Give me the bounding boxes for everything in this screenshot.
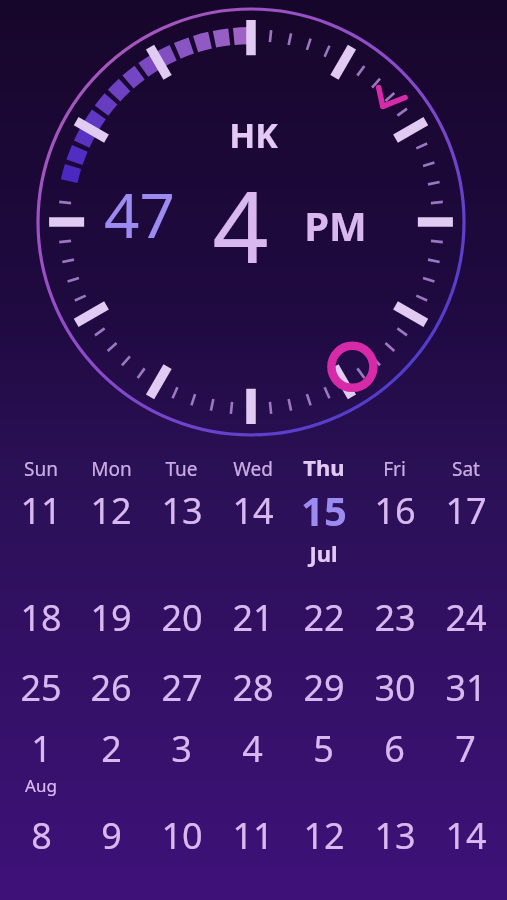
staticText: 12 (303, 811, 345, 860)
button[interactable]: 6 (359, 724, 430, 773)
button[interactable]: Clock face, 4:47 PM Hong Kong (0, 0, 507, 448)
button[interactable]: 31 (430, 663, 501, 712)
button[interactable]: 26 (76, 663, 146, 712)
button[interactable]: 11 (217, 811, 288, 860)
staticText: 5 (313, 724, 334, 773)
staticText: 25 (20, 663, 62, 712)
button[interactable]: 3 (146, 724, 217, 773)
staticText: Wed (233, 456, 273, 482)
staticText: 4 (242, 724, 263, 773)
button[interactable]: Fri (359, 456, 430, 482)
staticText: Fri (383, 456, 406, 482)
staticText: 13 (161, 486, 203, 535)
button[interactable]: 23 (359, 593, 430, 642)
button[interactable]: 29 (288, 663, 359, 712)
button[interactable]: 1 (6, 724, 76, 773)
button[interactable]: 24 (430, 593, 501, 642)
staticText: 29 (303, 663, 345, 712)
staticText: Mon (91, 456, 132, 482)
staticText: 26 (90, 663, 132, 712)
staticText: 3 (171, 724, 192, 773)
staticText: 21 (232, 593, 274, 642)
button[interactable]: 11 (6, 486, 76, 535)
staticText: 23 (374, 593, 416, 642)
button[interactable]: 8 (6, 811, 76, 860)
staticText: 17 (445, 486, 487, 535)
button[interactable]: Tue (146, 456, 217, 482)
button[interactable]: 20 (146, 593, 217, 642)
staticText: 11 (20, 486, 62, 535)
staticText: 4 (212, 158, 269, 291)
button[interactable]: 28 (217, 663, 288, 712)
button[interactable]: 21 (217, 593, 288, 642)
button[interactable]: 22 (288, 593, 359, 642)
button[interactable]: Sun (6, 456, 76, 482)
staticText: 11 (232, 811, 274, 860)
button[interactable]: 16 (359, 486, 430, 535)
button[interactable]: 25 (6, 663, 76, 712)
staticText: 19 (90, 593, 132, 642)
staticText: 30 (374, 663, 416, 712)
button[interactable]: 13 (146, 486, 217, 535)
button[interactable]: 18 (6, 593, 76, 642)
button[interactable]: 17 (430, 486, 501, 535)
staticText: 24 (445, 593, 487, 642)
staticText: HK (229, 112, 278, 158)
button[interactable]: 2 (76, 724, 146, 773)
button[interactable]: 27 (146, 663, 217, 712)
staticText: 2 (101, 724, 122, 773)
staticText: 27 (161, 663, 203, 712)
button[interactable]: 5 (288, 724, 359, 773)
button[interactable]: 10 (146, 811, 217, 860)
staticText: 22 (303, 593, 345, 642)
staticText: Aug (25, 774, 57, 797)
staticText: Sun (24, 456, 58, 482)
button[interactable]: 4 (217, 724, 288, 773)
staticText: 12 (90, 486, 132, 535)
staticText: 15 (301, 483, 347, 537)
button[interactable]: 12 (76, 486, 146, 535)
staticText: 6 (384, 724, 405, 773)
staticText: 9 (101, 811, 122, 860)
button[interactable]: 12 (288, 811, 359, 860)
button[interactable]: 14 (430, 811, 501, 860)
button[interactable]: Wed (217, 456, 288, 482)
button[interactable]: 30 (359, 663, 430, 712)
staticText: 10 (161, 811, 203, 860)
staticText: Thu (303, 452, 345, 482)
staticText: 16 (374, 486, 416, 535)
button[interactable]: Mon (76, 456, 146, 482)
button[interactable]: Thu (288, 452, 359, 482)
staticText: 14 (445, 811, 487, 860)
staticText: 20 (161, 593, 203, 642)
staticText: 47 (104, 172, 175, 256)
staticText: PM (304, 198, 367, 252)
staticText: 1 (31, 724, 52, 773)
other: Clock face, 4:47 PM Hong Kong (0, 0, 507, 448)
button[interactable]: 14 (217, 486, 288, 535)
staticText: 8 (31, 811, 52, 860)
staticText: Jul (309, 538, 338, 568)
staticText: 18 (20, 593, 62, 642)
button[interactable]: 9 (76, 811, 146, 860)
staticText: Tue (165, 456, 198, 482)
button[interactable]: 13 (359, 811, 430, 860)
button[interactable]: 7 (430, 724, 501, 773)
button[interactable]: Sat (430, 456, 501, 482)
staticText: 7 (455, 724, 476, 773)
staticText: 13 (374, 811, 416, 860)
button[interactable]: 19 (76, 593, 146, 642)
staticText: 14 (232, 486, 274, 535)
staticText: 28 (232, 663, 274, 712)
staticText: Sat (452, 456, 480, 482)
staticText: 31 (445, 663, 487, 712)
button[interactable]: 15 (288, 483, 359, 537)
